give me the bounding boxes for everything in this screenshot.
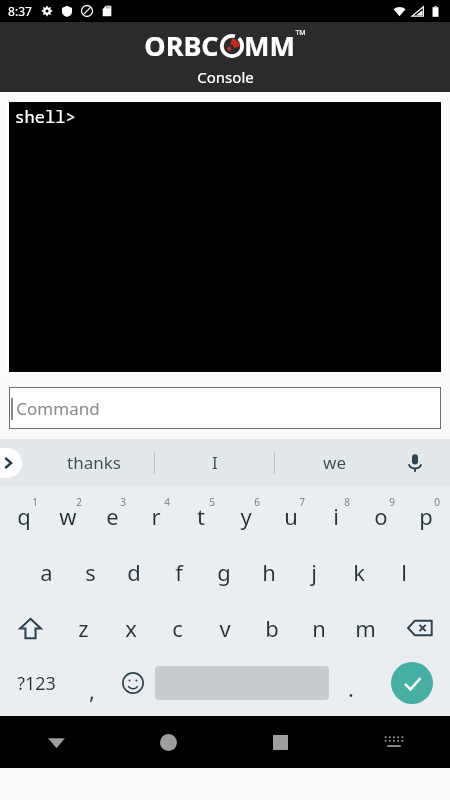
staticText: 8 (344, 495, 350, 509)
staticText: d (127, 557, 141, 587)
staticText: Command (16, 397, 100, 420)
staticText: l (401, 557, 407, 587)
button[interactable]: n (295, 604, 342, 652)
staticText: r (151, 501, 161, 531)
button[interactable]: t (178, 492, 223, 540)
staticText: I (212, 451, 218, 474)
button[interactable]: , (72, 658, 111, 708)
button[interactable]: I (155, 439, 274, 486)
staticText: o (374, 501, 388, 531)
button[interactable]: m (342, 604, 389, 652)
button[interactable]: thanks (34, 439, 154, 486)
staticText: 9 (389, 495, 395, 509)
staticText: we (323, 451, 346, 474)
staticText: y (240, 501, 252, 531)
button[interactable]: z (60, 604, 107, 652)
button[interactable]: Enter (373, 658, 450, 708)
staticText: 4 (164, 495, 170, 509)
staticText: t (197, 501, 205, 531)
staticText: e (106, 501, 119, 531)
button[interactable]: Emoji (111, 658, 155, 708)
button[interactable]: o (358, 492, 403, 540)
staticText: 6 (254, 495, 260, 509)
button[interactable]: Voice input (394, 439, 436, 486)
staticText: p (419, 501, 433, 531)
staticText: shell> (14, 105, 76, 128)
staticText: k (353, 557, 365, 587)
button[interactable]: Expand suggestions (0, 448, 22, 478)
button[interactable]: k (336, 548, 381, 596)
staticText: j (311, 557, 317, 587)
staticText: s (85, 557, 96, 587)
staticText: , (89, 675, 95, 705)
button[interactable]: r (134, 492, 178, 540)
button[interactable]: g (201, 548, 246, 596)
button[interactable]: Shift (0, 604, 60, 652)
button[interactable]: c (154, 604, 201, 652)
button[interactable]: we (275, 439, 394, 486)
staticText: TM (295, 28, 306, 38)
staticText: thanks (67, 451, 121, 474)
staticText: 5 (209, 495, 215, 509)
staticText: v (219, 613, 231, 643)
staticText: f (175, 557, 183, 587)
button[interactable]: Hide keyboard (0, 716, 112, 768)
staticText: c (172, 613, 183, 643)
button[interactable]: q (2, 492, 46, 540)
button[interactable]: l (381, 548, 426, 596)
staticText: 7 (299, 495, 305, 509)
staticText: a (40, 557, 53, 587)
button[interactable]: h (246, 548, 291, 596)
staticText: h (262, 557, 276, 587)
button[interactable]: p (403, 492, 448, 540)
button[interactable]: Command (9, 387, 441, 429)
button[interactable]: Switch keyboard (337, 716, 450, 768)
button[interactable]: Home (112, 716, 224, 768)
staticText: 2 (76, 495, 82, 509)
staticText: u (284, 501, 298, 531)
button[interactable]: e (90, 492, 134, 540)
button[interactable]: b (248, 604, 295, 652)
button[interactable]: i (313, 492, 358, 540)
staticText: ORBC (144, 27, 219, 64)
staticText: z (78, 613, 89, 643)
button[interactable]: . (329, 658, 373, 708)
button[interactable]: u (268, 492, 313, 540)
staticText: Console (197, 67, 254, 87)
button[interactable]: Backspace (389, 604, 450, 652)
button[interactable]: f (156, 548, 201, 596)
staticText: 8:37 (8, 3, 32, 19)
staticText: g (217, 557, 231, 587)
button[interactable]: x (107, 604, 154, 652)
button[interactable]: j (291, 548, 336, 596)
staticText: m (355, 613, 376, 643)
button[interactable]: ?123 (0, 658, 72, 708)
staticText: 1 (32, 495, 38, 509)
button[interactable]: v (201, 604, 248, 652)
button[interactable]: d (112, 548, 156, 596)
staticText: i (333, 501, 339, 531)
staticText: 0 (434, 495, 440, 509)
button[interactable]: y (223, 492, 268, 540)
staticText: b (265, 613, 279, 643)
button[interactable]: a (24, 548, 68, 596)
staticText: w (59, 501, 77, 531)
button[interactable]: s (68, 548, 112, 596)
staticText: x (125, 613, 137, 643)
staticText: q (17, 501, 31, 531)
staticText: n (312, 613, 326, 643)
staticText: ?123 (17, 671, 56, 696)
staticText: 3 (120, 495, 126, 509)
button[interactable]: shell> (7, 100, 443, 374)
staticText: . (348, 673, 354, 703)
button[interactable]: w (46, 492, 90, 540)
button[interactable]: Recent apps (224, 716, 337, 768)
staticText: MM (244, 27, 295, 64)
